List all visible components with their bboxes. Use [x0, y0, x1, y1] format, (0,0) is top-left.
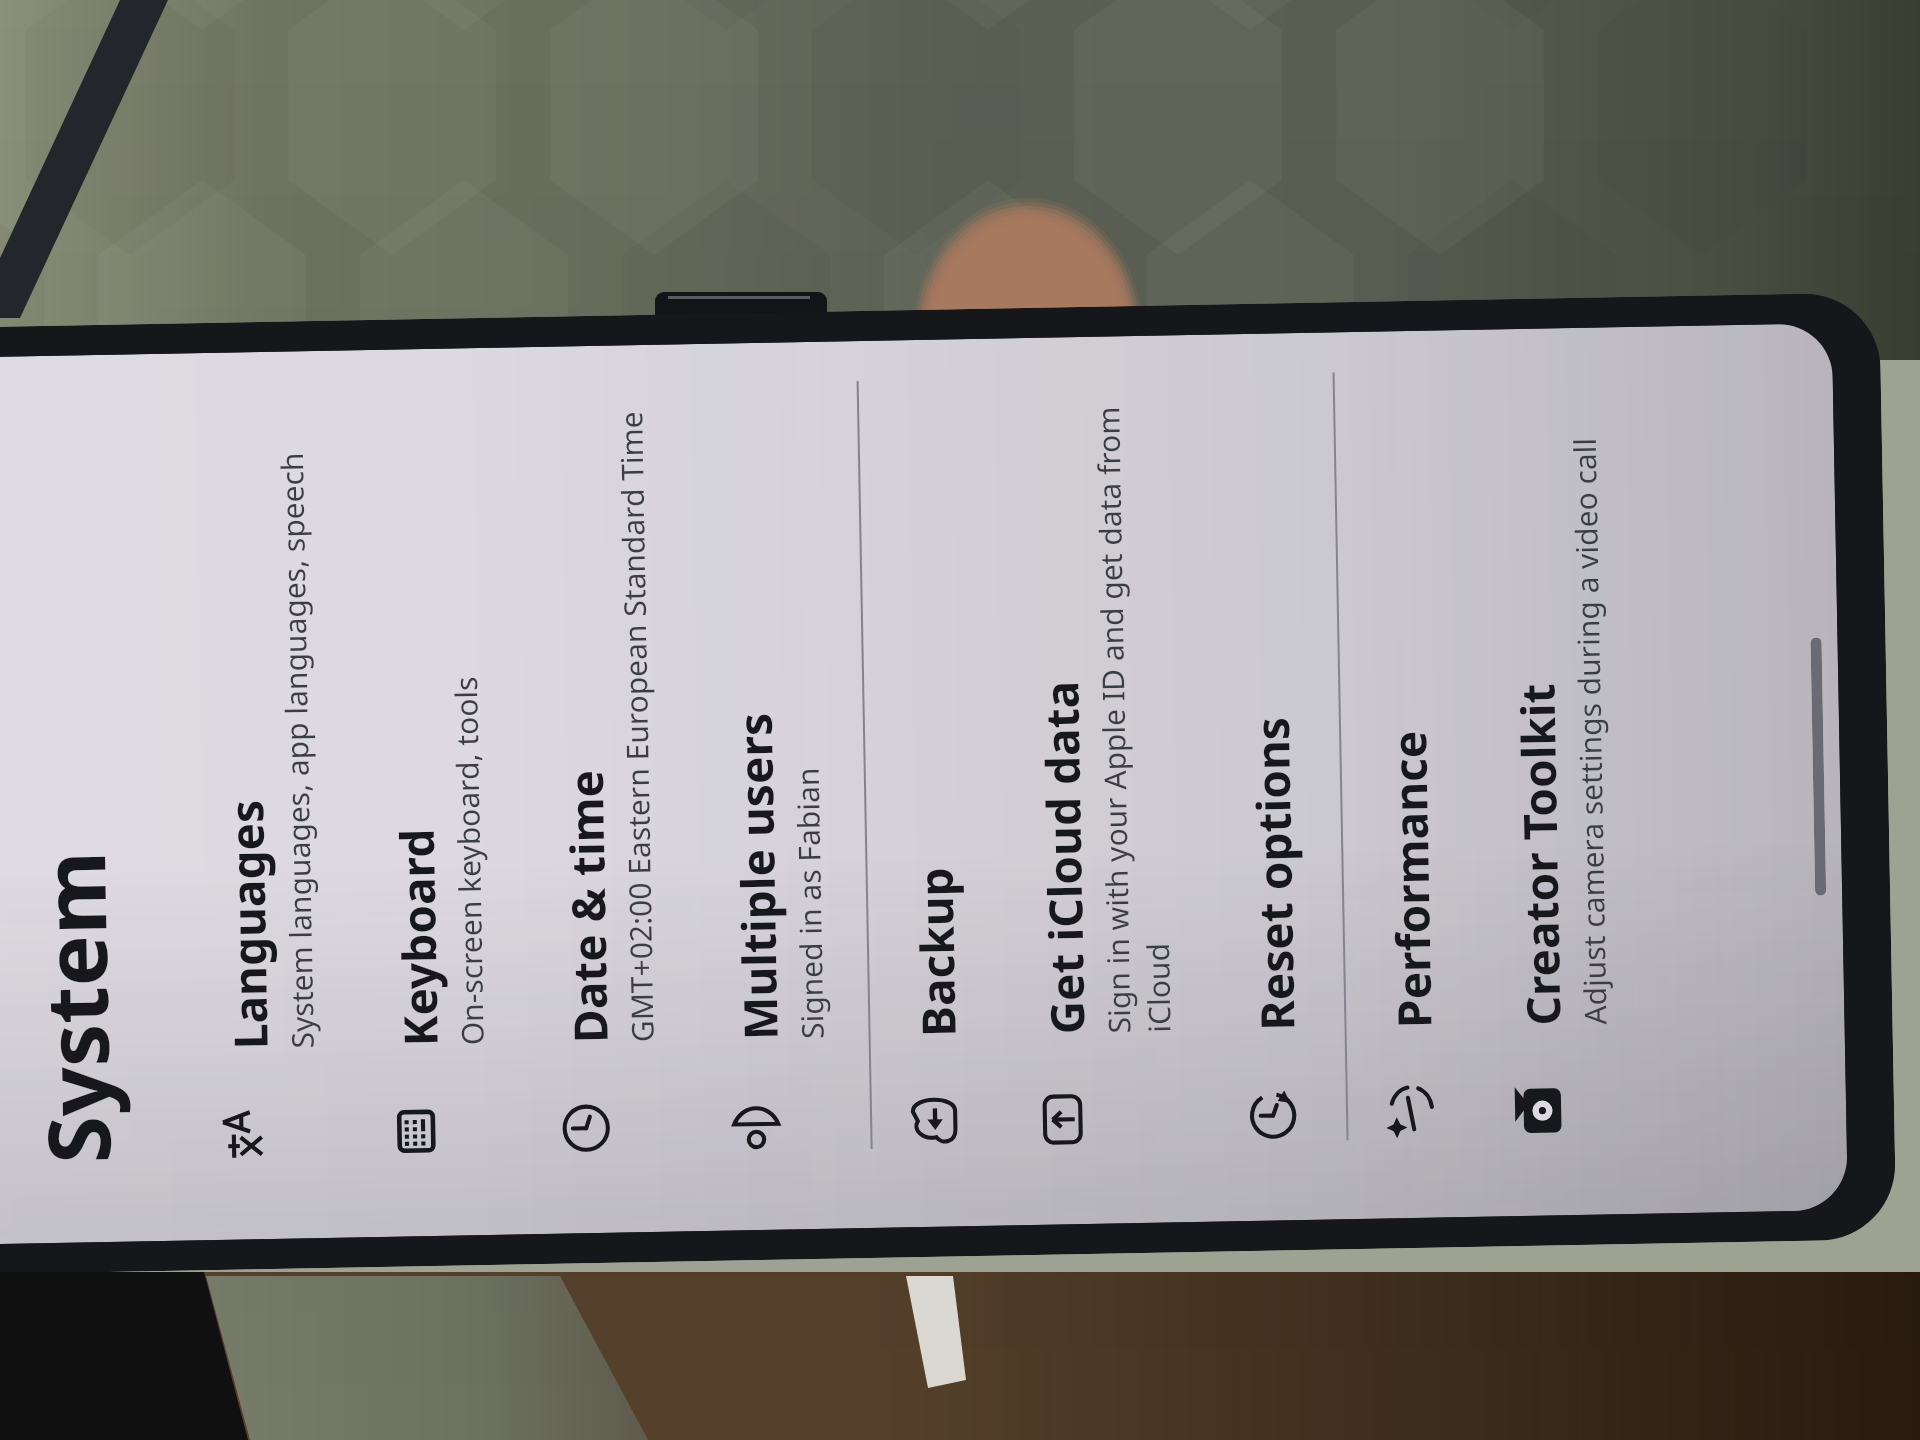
button[interactable]: Performance	[1337, 330, 1482, 1219]
button[interactable]: Reset options	[1200, 332, 1345, 1222]
staticText: Date & time	[554, 769, 622, 1044]
staticText: Keyboard	[385, 828, 452, 1047]
staticText: System	[13, 849, 136, 1165]
staticText: On-screen keyboard, tools	[445, 676, 493, 1046]
button[interactable]: Creator Toolkit	[1466, 327, 1652, 1217]
button[interactable]: Keyboard	[343, 347, 529, 1237]
staticText: Languages	[214, 799, 282, 1050]
button[interactable]: Home	[1810, 637, 1826, 896]
staticText: Get iCloud data	[1029, 680, 1099, 1035]
staticText: Sign in with your Apple ID and get data …	[1087, 405, 1180, 1034]
button[interactable]: Get iCloud data	[990, 335, 1216, 1225]
button[interactable]: Languages	[173, 350, 359, 1240]
staticText: Reset options	[1240, 716, 1308, 1031]
staticText: Multiple users	[723, 711, 792, 1041]
staticText: Backup	[903, 866, 970, 1037]
button[interactable]: Backup	[861, 339, 1006, 1228]
staticText: Signed in as Fabian	[787, 767, 833, 1039]
staticText: Creator Toolkit	[1505, 682, 1575, 1026]
staticText: Adjust camera settings during a video ca…	[1564, 437, 1615, 1025]
staticText: Performance	[1377, 729, 1446, 1029]
staticText: System languages, app languages, speech	[271, 452, 323, 1049]
button[interactable]: Date & time	[513, 344, 699, 1234]
button[interactable]: Multiple users	[683, 341, 869, 1231]
staticText: GMT+02:00 Eastern European Standard Time	[610, 411, 663, 1042]
